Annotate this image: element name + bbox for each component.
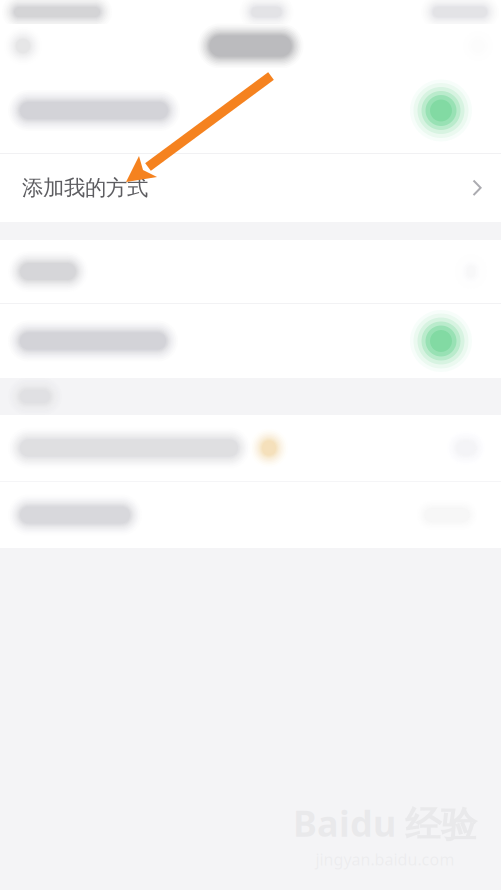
button[interactable]: 添加我的方式 xyxy=(0,154,501,222)
staticText: 添加我的方式 xyxy=(22,175,148,201)
staticText: Baidu 经验 xyxy=(293,799,477,847)
